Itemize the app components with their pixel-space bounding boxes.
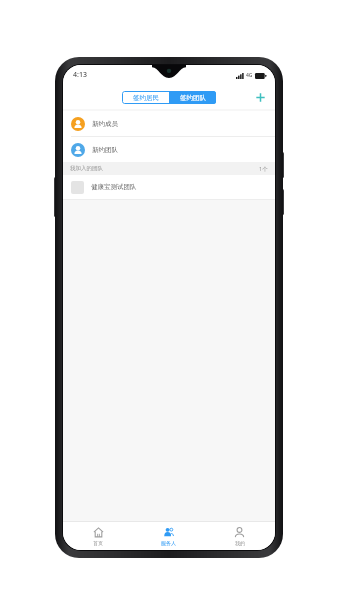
staticText: 签约居民 (133, 94, 159, 102)
button[interactable]: 首页 (63, 522, 133, 550)
button[interactable]: 添加 (251, 88, 269, 106)
button[interactable]: 签约团队 (169, 91, 216, 104)
staticText: 健康宝测试团队 (91, 183, 137, 191)
staticText: 新约成员 (92, 120, 118, 128)
staticText: 我的 (235, 540, 245, 546)
staticText: 4:13 (73, 70, 87, 80)
staticText: 我加入的团队 (70, 165, 103, 172)
button[interactable]: 签约居民 (122, 91, 169, 104)
button[interactable]: 新约团队 (63, 137, 275, 162)
staticText: 4G (246, 72, 253, 79)
staticText: 1个 (259, 165, 268, 173)
staticText: 首页 (93, 540, 103, 546)
staticText: 新约团队 (92, 146, 118, 154)
button[interactable]: 我的 (204, 522, 275, 550)
staticText: 服务人 (161, 540, 176, 546)
button[interactable]: 服务人 (133, 522, 204, 550)
staticText: 签约团队 (180, 94, 206, 102)
button[interactable]: 健康宝测试团队 (63, 175, 275, 199)
button[interactable]: 新约成员 (63, 111, 275, 136)
